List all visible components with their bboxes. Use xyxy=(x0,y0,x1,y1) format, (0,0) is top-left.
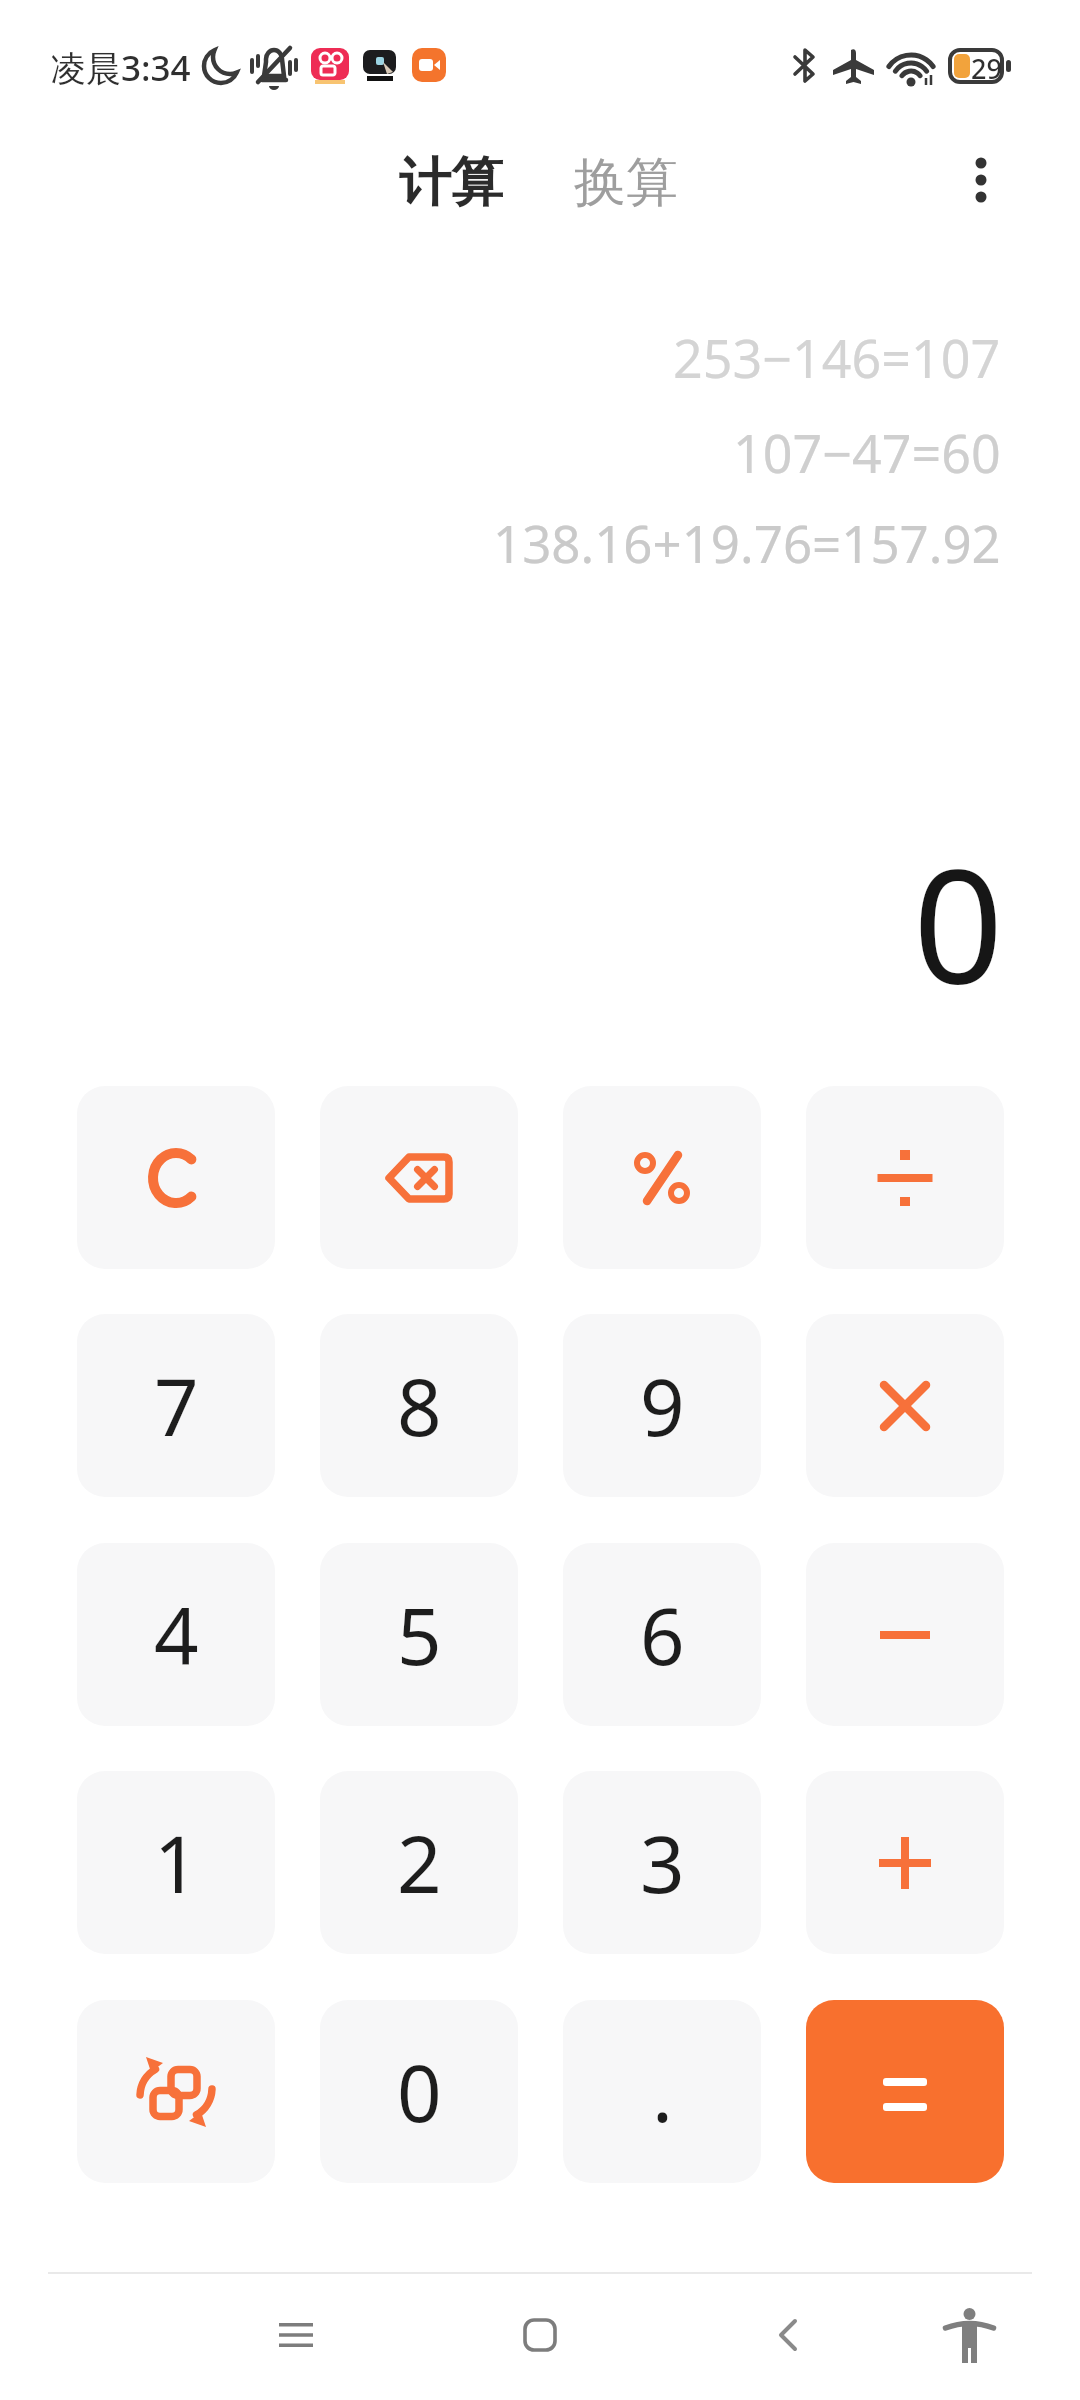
button[interactable] xyxy=(563,1086,761,1269)
button[interactable] xyxy=(764,2310,812,2360)
staticText: 5 xyxy=(397,1582,442,1688)
button[interactable]: 9 xyxy=(563,1314,761,1497)
staticText: . xyxy=(652,2039,673,2145)
button[interactable] xyxy=(806,1771,1004,1954)
staticText: 29 xyxy=(971,50,1002,87)
button[interactable] xyxy=(806,1086,1004,1269)
button[interactable]: 1 xyxy=(77,1771,275,1954)
staticText: 3 xyxy=(640,1810,685,1916)
staticText: 2 xyxy=(397,1810,442,1916)
staticText: 凌晨3:34 xyxy=(51,44,191,92)
button[interactable]: 换算 xyxy=(574,150,678,216)
staticText: 107−47=60 xyxy=(733,417,1001,488)
button[interactable] xyxy=(320,1086,518,1269)
staticText: 1 xyxy=(154,1810,199,1916)
button[interactable] xyxy=(272,2310,320,2360)
staticText: 9 xyxy=(640,1353,685,1459)
button[interactable]: 3 xyxy=(563,1771,761,1954)
button[interactable]: . xyxy=(563,2000,761,2183)
button[interactable]: 8 xyxy=(320,1314,518,1497)
staticText: 0 xyxy=(397,2039,442,2145)
button[interactable] xyxy=(806,1314,1004,1497)
button[interactable] xyxy=(806,1543,1004,1726)
button[interactable] xyxy=(516,2310,564,2360)
button[interactable]: 计算 xyxy=(399,150,503,216)
button[interactable] xyxy=(944,2302,994,2364)
staticText: 7 xyxy=(154,1353,199,1459)
button[interactable]: 5 xyxy=(320,1543,518,1726)
staticText: 8 xyxy=(397,1353,442,1459)
button[interactable] xyxy=(969,151,993,211)
button[interactable]: 7 xyxy=(77,1314,275,1497)
staticText: 0 xyxy=(913,814,1004,1029)
staticText: 换算 xyxy=(574,150,678,216)
button[interactable] xyxy=(77,2000,275,2183)
staticText: 计算 xyxy=(399,150,503,216)
button[interactable]: 2 xyxy=(320,1771,518,1954)
button[interactable] xyxy=(806,2000,1004,2183)
button[interactable]: 0 xyxy=(320,2000,518,2183)
staticText: 138.16+19.76=157.92 xyxy=(493,508,1001,577)
staticText: 253−146=107 xyxy=(673,322,1001,393)
button[interactable] xyxy=(77,1086,275,1269)
button[interactable]: 4 xyxy=(77,1543,275,1726)
button[interactable]: 6 xyxy=(563,1543,761,1726)
staticText: 4 xyxy=(154,1582,199,1688)
staticText: 6 xyxy=(640,1582,685,1688)
